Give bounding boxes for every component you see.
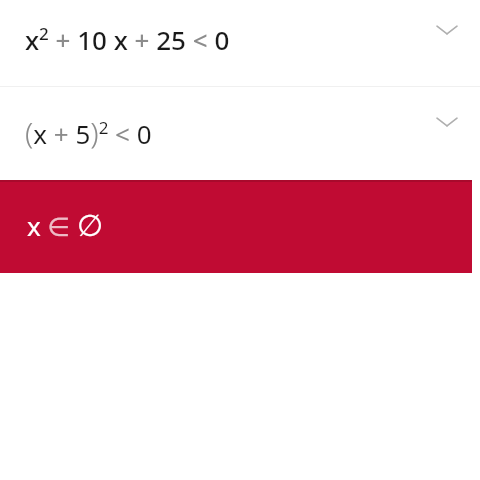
button[interactable]: Expand step [432, 110, 462, 134]
button[interactable]: Expand step [432, 18, 462, 42]
button[interactable]: x ∈ ∅ [0, 180, 480, 273]
staticText: x ∈ ∅ [27, 208, 104, 243]
staticText: x2 + 10 x + 25 < 0 [25, 22, 230, 57]
button[interactable]: x2 + 10 x + 25 < 0 [0, 0, 480, 87]
button[interactable]: (x + 5)2 < 0 [0, 87, 480, 180]
staticText: (x + 5)2 < 0 [25, 112, 152, 153]
